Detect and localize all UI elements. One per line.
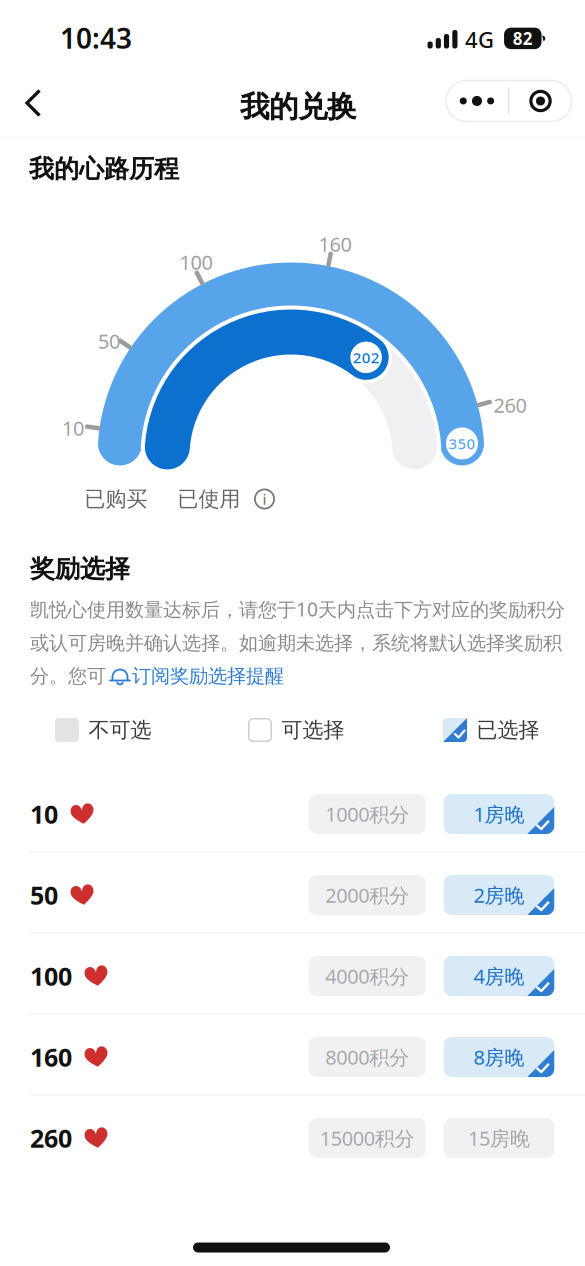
staticText: 260 — [30, 1121, 72, 1155]
button[interactable]: 8房晚 — [444, 1037, 554, 1077]
staticText: 15000积分 — [320, 1124, 415, 1152]
staticText: 2房晚 — [473, 881, 524, 909]
button[interactable]: 4房晚 — [444, 956, 554, 996]
staticText: i — [262, 489, 266, 509]
staticText: 我的兑换 — [240, 88, 356, 126]
staticText: 1房晚 — [473, 800, 524, 828]
button[interactable]: 2000积分 — [309, 875, 426, 915]
button[interactable]: 8000积分 — [309, 1037, 426, 1077]
staticText: 50 — [30, 878, 58, 912]
staticText: 15房晚 — [468, 1124, 530, 1152]
staticText: 可选择 — [281, 717, 344, 743]
staticText: 8房晚 — [473, 1043, 524, 1071]
staticText: 350 — [448, 433, 475, 454]
button[interactable]: 15000积分 — [309, 1118, 426, 1158]
button[interactable]: 2房晚 — [444, 875, 554, 915]
staticText: 10 — [30, 797, 58, 831]
staticText: 10:43 — [60, 19, 132, 57]
staticText: 202 — [353, 347, 380, 367]
button[interactable]: 1000积分 — [309, 794, 426, 834]
staticText: 82 — [513, 27, 533, 50]
button[interactable]: 1房晚 — [444, 794, 554, 834]
staticText: 160 — [30, 1040, 72, 1074]
button[interactable]: More — [445, 80, 509, 122]
button[interactable]: Close — [509, 80, 572, 122]
staticText: 我的心路历程 — [29, 153, 179, 185]
button[interactable]: 15房晚 — [444, 1118, 554, 1158]
staticText: 凯悦心使用数量达标后，请您于10天内点击下方对应的奖励积分 — [30, 596, 565, 622]
staticText: 订阅奖励选择提醒 — [132, 664, 284, 688]
staticText: 已使用 — [177, 486, 240, 512]
button[interactable]: Back — [13, 83, 53, 123]
staticText: 4000积分 — [325, 962, 409, 990]
staticText: 已购买 — [84, 486, 147, 512]
button[interactable]: 订阅奖励选择提醒 — [109, 664, 284, 688]
staticText: 4房晚 — [473, 962, 524, 990]
staticText: 10 — [62, 414, 84, 442]
staticText: 100 — [30, 959, 72, 993]
staticText: 1000积分 — [325, 800, 409, 828]
staticText: 50 — [98, 327, 120, 355]
staticText: 分。您可 — [30, 664, 106, 688]
staticText: 已选择 — [476, 717, 539, 743]
staticText: 不可选 — [88, 717, 151, 743]
button[interactable]: 4000积分 — [309, 956, 426, 996]
staticText: 160 — [318, 230, 351, 258]
staticText: 2000积分 — [325, 881, 409, 909]
staticText: 4G — [465, 24, 494, 54]
staticText: 或认可房晚并确认选择。如逾期未选择，系统将默认选择奖励积 — [30, 631, 562, 655]
staticText: 100 — [179, 248, 212, 276]
staticText: 260 — [493, 391, 526, 419]
staticText: 奖励选择 — [30, 553, 130, 585]
staticText: 8000积分 — [325, 1043, 409, 1071]
